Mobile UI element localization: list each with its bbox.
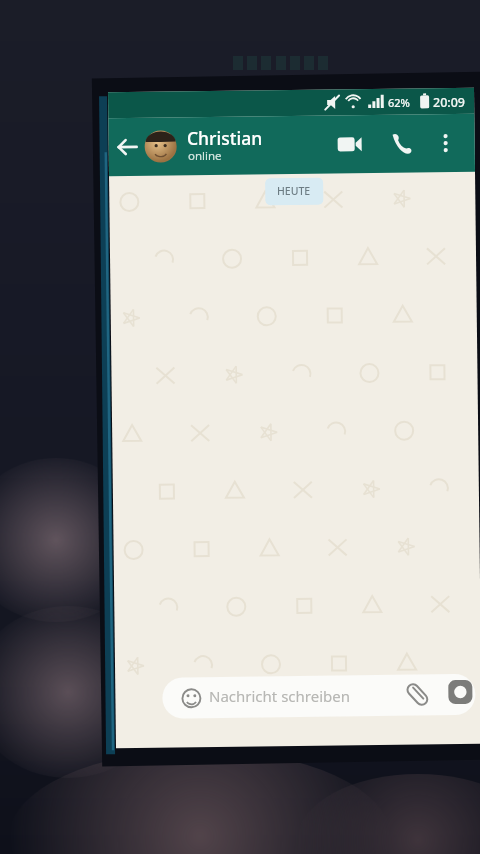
staticText: Christian [187,126,263,150]
button[interactable]: Voice call [385,125,423,161]
button[interactable]: Emoji [170,678,206,716]
button[interactable]: HEUTE [268,178,326,205]
button[interactable]: Christian, online [148,112,328,164]
staticText: 62% [388,95,410,110]
button[interactable]: Camera [443,680,473,712]
button[interactable]: Nachricht schreiben [206,678,396,716]
staticText: online [188,148,222,164]
staticText: 20:09 [433,94,466,111]
button[interactable]: More options [431,125,467,161]
staticText: HEUTE [277,184,311,198]
button[interactable]: Video call [333,125,371,161]
button[interactable]: Back [116,126,148,160]
staticText: Nachricht schreiben [209,686,350,706]
button[interactable]: Attach [397,678,431,716]
